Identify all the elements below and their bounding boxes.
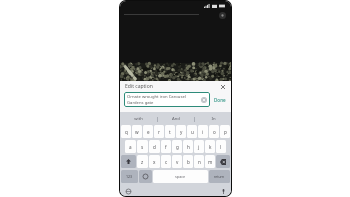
button[interactable]: z [137, 155, 148, 168]
button[interactable]: o [209, 125, 219, 138]
staticText: i [202, 129, 204, 135]
button[interactable]: a [125, 140, 136, 153]
staticText: x [153, 159, 156, 165]
button[interactable]: More options [219, 12, 226, 19]
button[interactable]: x [149, 155, 160, 168]
button[interactable]: Change keyboard language [124, 187, 132, 195]
button[interactable]: Ornate wrought iron Carousel Gardens gat… [127, 92, 207, 107]
button[interactable]: Done [213, 95, 227, 105]
staticText: n [198, 159, 201, 165]
button[interactable]: Voice input [219, 187, 227, 195]
staticText: t [169, 129, 171, 135]
staticText: z [141, 159, 144, 165]
button[interactable]: h [183, 140, 193, 153]
button[interactable]: e [143, 125, 153, 138]
button[interactable]: l [216, 140, 226, 153]
button[interactable]: p [220, 125, 230, 138]
staticText: s [141, 144, 144, 150]
staticText: And [172, 116, 180, 122]
staticText: b [187, 159, 190, 165]
staticText: k [209, 144, 212, 150]
button[interactable]: t [165, 125, 175, 138]
button[interactable]: s [137, 140, 148, 153]
button[interactable]: Shift [121, 155, 136, 168]
button[interactable]: 123 [121, 170, 138, 183]
button[interactable]: d [149, 140, 160, 153]
staticText: l [220, 144, 222, 150]
staticText: v [176, 159, 179, 165]
button[interactable]: space [153, 170, 208, 183]
staticText: return [214, 174, 225, 179]
staticText: r [158, 129, 160, 135]
staticText: Done [214, 97, 226, 103]
staticText: u [191, 129, 194, 135]
button[interactable]: k [205, 140, 215, 153]
staticText: q [125, 129, 128, 135]
staticText: o [213, 129, 216, 135]
button[interactable]: c [161, 155, 171, 168]
staticText: space [175, 174, 186, 179]
button[interactable]: r [154, 125, 164, 138]
button[interactable]: m [205, 155, 215, 168]
button[interactable]: i [198, 125, 208, 138]
staticText: j [198, 144, 200, 150]
staticText: p [224, 129, 227, 135]
staticText: e [147, 129, 150, 135]
button[interactable]: n [194, 155, 204, 168]
button[interactable]: y [176, 125, 186, 138]
button[interactable]: u [187, 125, 197, 138]
button[interactable]: q [121, 125, 131, 138]
staticText: Edit caption [125, 83, 153, 90]
button[interactable]: return [209, 170, 230, 183]
staticText: c [165, 159, 168, 165]
button[interactable]: b [183, 155, 193, 168]
staticText: w [135, 129, 139, 135]
staticText: h [187, 144, 190, 150]
button[interactable]: Backspace [216, 155, 230, 168]
staticText: Ornate wrought iron Carousel Gardens gat… [127, 94, 200, 105]
button[interactable]: v [172, 155, 182, 168]
staticText: f [165, 144, 167, 150]
staticText: In [211, 116, 216, 122]
button[interactable]: Emoji [139, 170, 152, 183]
button[interactable]: w [132, 125, 142, 138]
staticText: a [129, 144, 132, 150]
staticText: g [176, 144, 179, 150]
button[interactable]: Close [219, 83, 227, 91]
staticText: with [134, 116, 143, 122]
staticText: d [153, 144, 156, 150]
button[interactable]: g [172, 140, 182, 153]
button[interactable]: Clear text [200, 96, 207, 103]
staticText: m [208, 159, 213, 165]
button[interactable]: f [161, 140, 171, 153]
staticText: 123 [126, 174, 133, 179]
button[interactable]: with [120, 115, 157, 123]
button[interactable]: And [158, 115, 194, 123]
button[interactable]: In [195, 115, 231, 123]
button[interactable]: j [194, 140, 204, 153]
staticText: y [180, 129, 183, 135]
